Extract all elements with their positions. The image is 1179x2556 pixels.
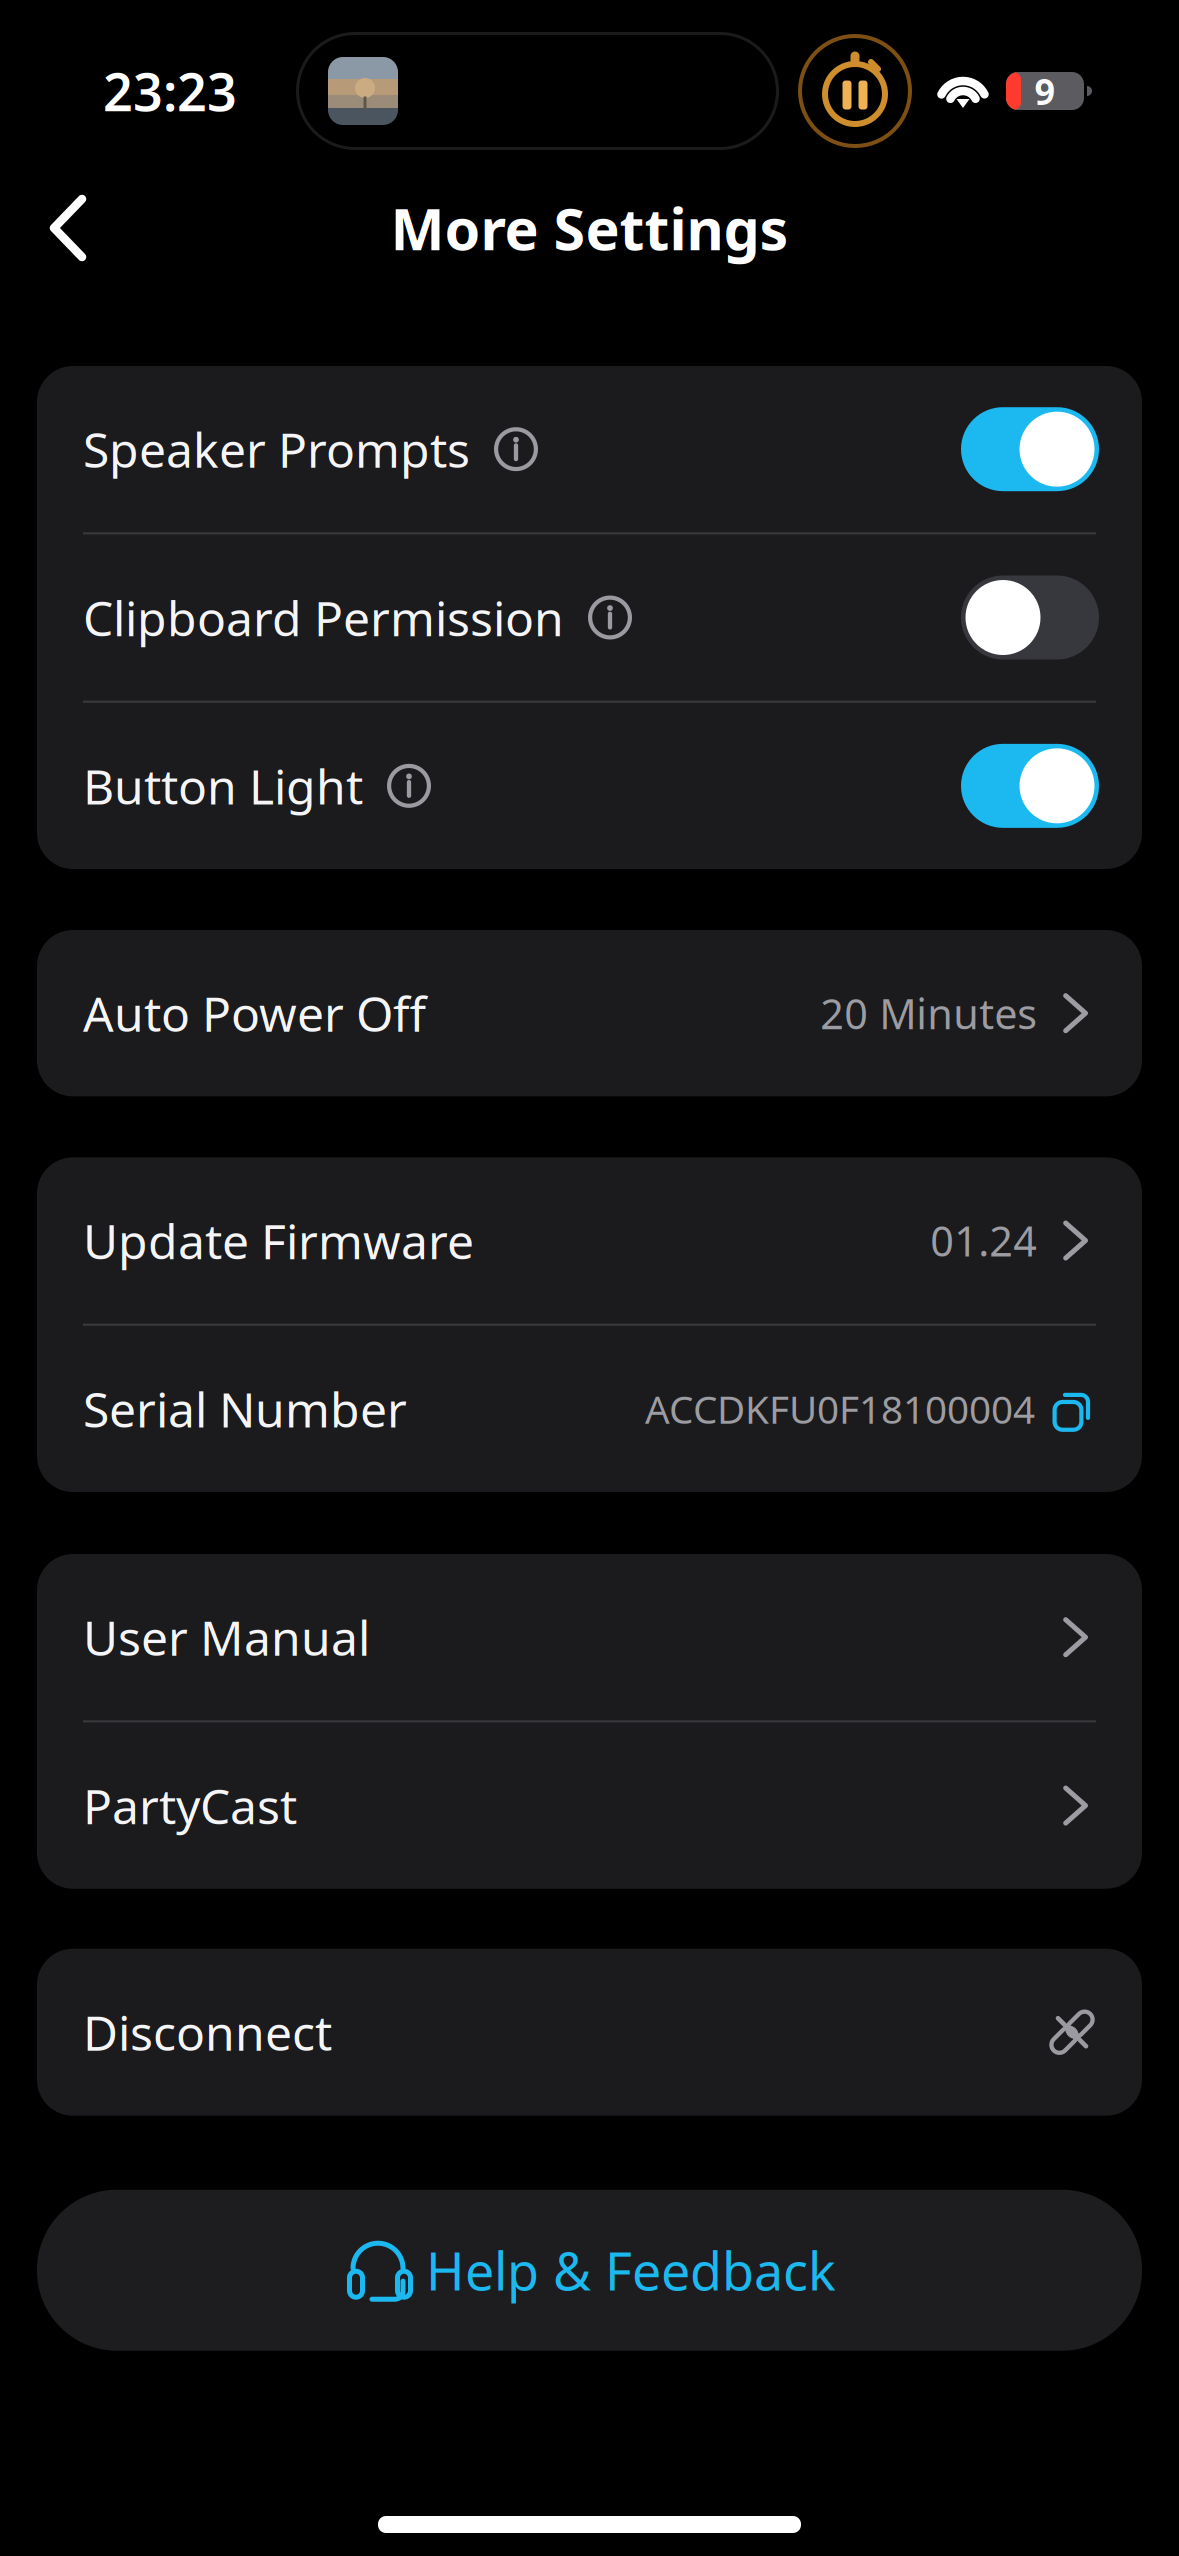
staticText: ACCDKFU0F18100004: [645, 1383, 1035, 1434]
staticText: More Settings: [390, 190, 788, 266]
staticText: User Manual: [83, 1605, 370, 1669]
button[interactable]: Auto Power Off: [37, 930, 1142, 1096]
staticText: Auto Power Off: [83, 981, 426, 1045]
staticText: Update Firmware: [83, 1209, 474, 1272]
staticText: Speaker Prompts: [83, 417, 470, 481]
staticText: Disconnect: [83, 2000, 332, 2064]
button[interactable]: Disconnect: [37, 1949, 1142, 2116]
button[interactable]: Back: [26, 174, 110, 282]
staticText: PartyCast: [83, 1774, 297, 1837]
staticText: 9: [1034, 67, 1055, 115]
button[interactable]: Update Firmware: [37, 1157, 1142, 1324]
button[interactable]: User Manual: [37, 1554, 1142, 1720]
staticText: 01.24: [930, 1213, 1037, 1268]
button[interactable]: Button Light: [37, 703, 1142, 869]
staticText: 23:23: [103, 56, 237, 126]
button[interactable]: PartyCast: [37, 1722, 1142, 1889]
button[interactable]: Clipboard Permission: [37, 534, 1142, 701]
staticText: Serial Number: [83, 1377, 407, 1441]
staticText: Button Light: [83, 754, 363, 818]
staticText: 20 Minutes: [820, 986, 1037, 1041]
staticText: Help & Feedback: [426, 2236, 836, 2305]
button[interactable]: Serial Number: [37, 1326, 1142, 1492]
button[interactable]: Help & Feedback: [37, 2190, 1142, 2351]
button[interactable]: Speaker Prompts: [37, 366, 1142, 532]
staticText: Clipboard Permission: [83, 586, 564, 649]
